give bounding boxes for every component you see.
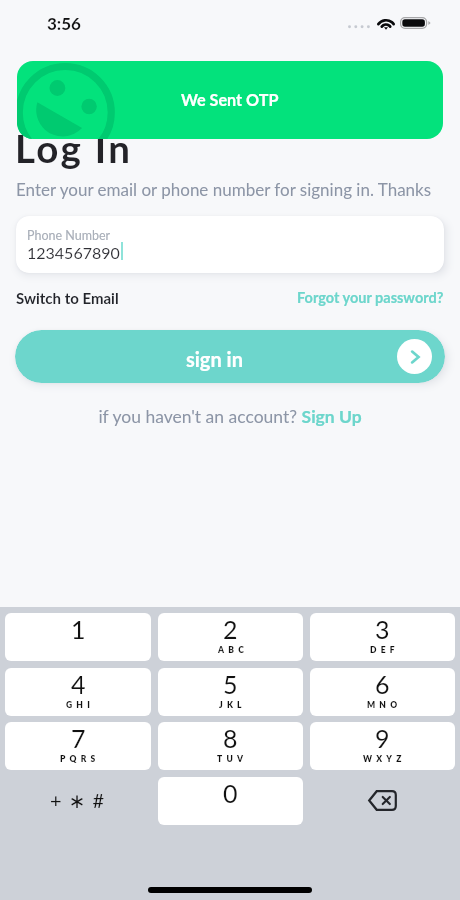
button[interactable]: if you haven't an account? Sign Up: [0, 406, 460, 427]
staticText: PQRS: [60, 754, 100, 764]
other: Cellular signal: [348, 25, 370, 30]
staticText: 7: [71, 723, 86, 753]
staticText: 3: [375, 614, 390, 644]
staticText: 1234567890: [27, 243, 120, 262]
staticText: 3:56: [47, 13, 81, 33]
button[interactable]: Backspace: [310, 777, 455, 825]
button[interactable]: 4: [5, 668, 151, 716]
button[interactable]: Phone Number: [16, 216, 444, 273]
button[interactable]: 5: [158, 668, 303, 716]
staticText: 1: [71, 614, 86, 644]
button[interactable]: Switch to Email: [16, 289, 119, 307]
staticText: sign in: [186, 347, 243, 371]
staticText: WXYZ: [363, 754, 406, 764]
staticText: 0: [223, 778, 238, 808]
staticText: DEF: [370, 645, 399, 655]
staticText: TUV: [217, 754, 248, 764]
button[interactable]: 6: [310, 668, 455, 716]
staticText: + ∗ #: [50, 788, 106, 812]
staticText: We Sent OTP: [181, 90, 279, 109]
staticText: 9: [375, 723, 390, 753]
staticText: 8: [223, 723, 238, 753]
button[interactable]: 1: [5, 613, 151, 661]
button[interactable]: 7: [5, 722, 151, 770]
button[interactable]: 2: [158, 613, 303, 661]
staticText: 6: [375, 669, 390, 699]
staticText: Enter your email or phone number for sig…: [16, 179, 432, 199]
staticText: ABC: [218, 645, 248, 655]
button[interactable]: + ∗ #: [5, 777, 151, 825]
staticText: 5: [223, 669, 238, 699]
staticText: MNO: [367, 700, 402, 710]
button[interactable]: 0: [158, 777, 303, 825]
button[interactable]: sign in: [15, 330, 445, 383]
staticText: 2: [223, 614, 238, 644]
staticText: JKL: [219, 700, 246, 710]
other: Battery: [400, 17, 431, 29]
button[interactable]: Forgot your password?: [297, 289, 444, 306]
staticText: Log In: [15, 125, 133, 171]
button[interactable]: 9: [310, 722, 455, 770]
staticText: Phone Number: [27, 228, 111, 243]
staticText: 4: [71, 669, 86, 699]
other: Wi-Fi: [376, 17, 396, 30]
button[interactable]: 3: [310, 613, 455, 661]
button[interactable]: 8: [158, 722, 303, 770]
button[interactable]: We Sent OTP: [17, 61, 443, 139]
staticText: GHI: [66, 700, 94, 710]
